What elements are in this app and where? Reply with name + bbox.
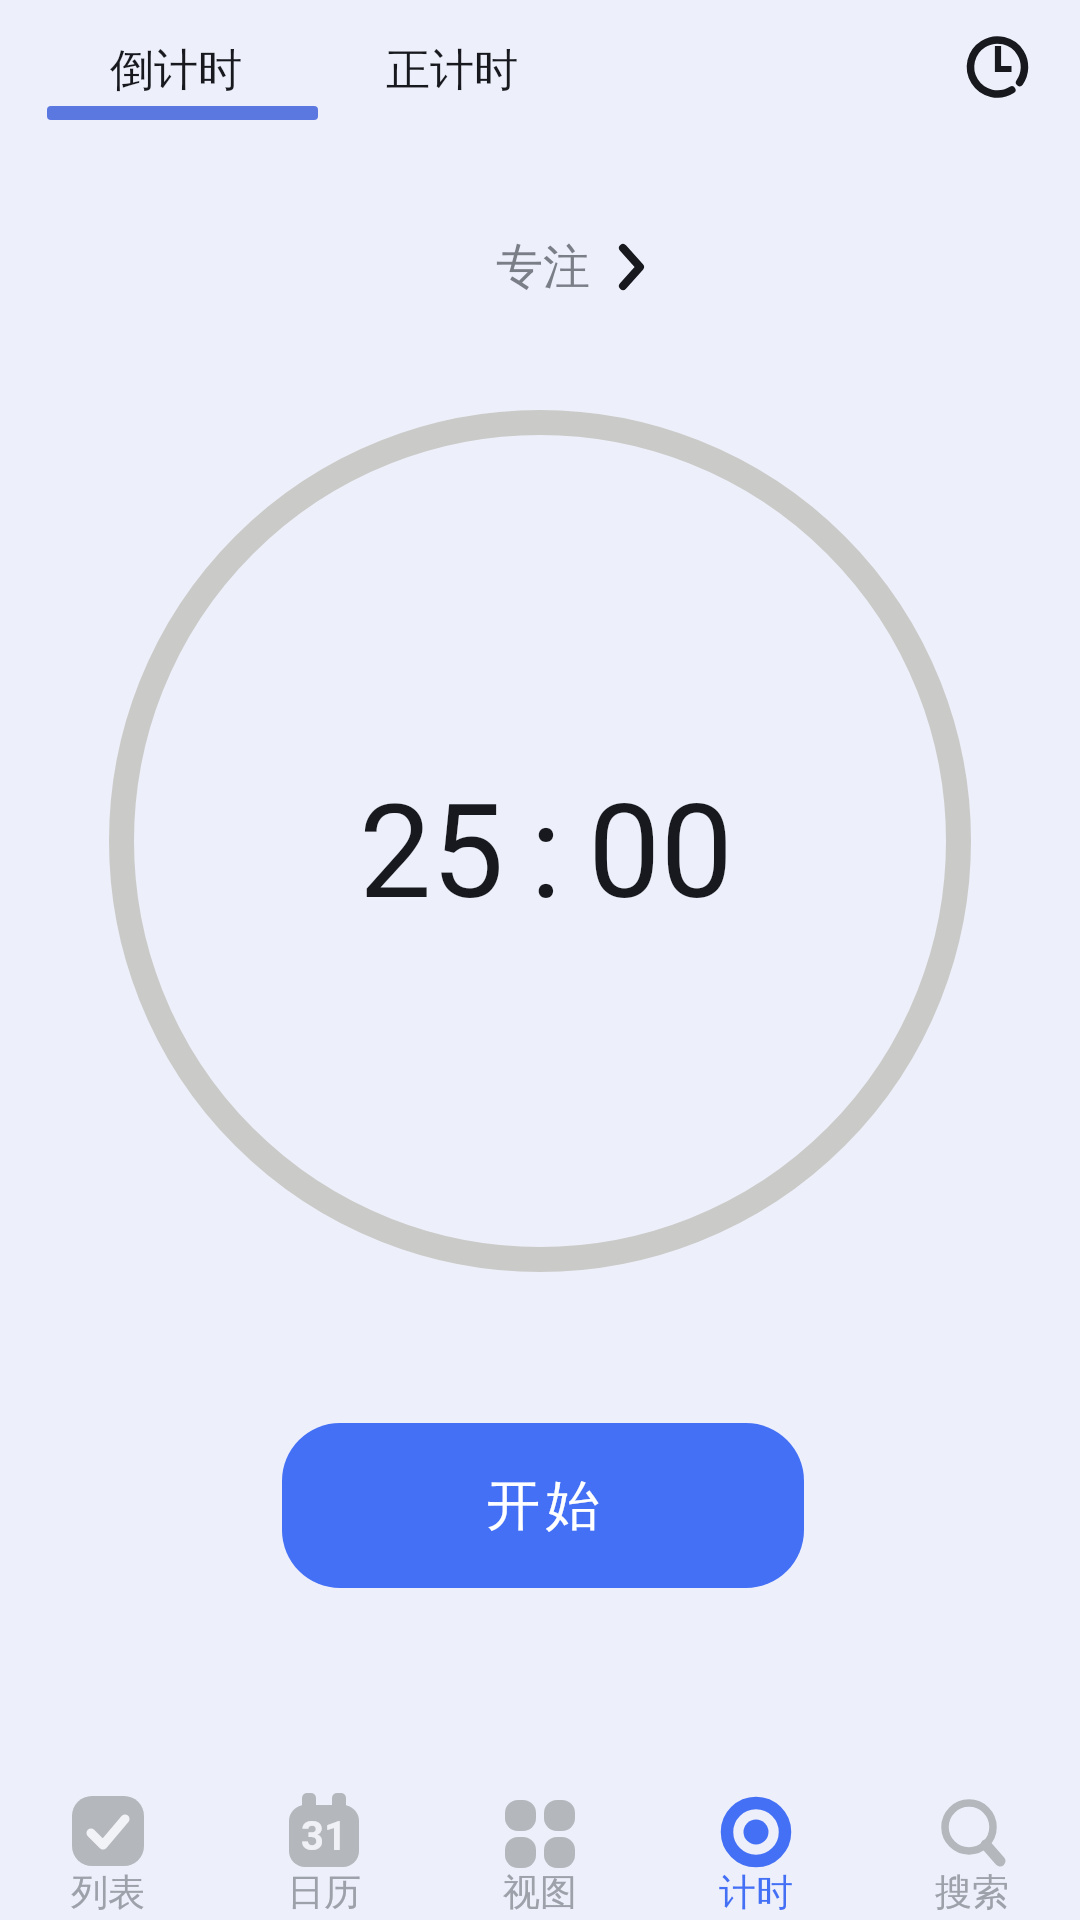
button[interactable]: 正计时	[316, 34, 588, 106]
button[interactable]: 计时	[648, 1780, 864, 1920]
staticText: 视图	[503, 1869, 577, 1916]
staticText: 计时	[719, 1869, 793, 1916]
staticText: 25 : 00	[359, 777, 733, 928]
button[interactable]: 倒计时	[40, 34, 312, 106]
staticText: 正计时	[386, 43, 518, 98]
staticText: 专注	[496, 238, 590, 297]
staticText: 倒计时	[110, 43, 242, 98]
staticText: 31	[301, 1813, 347, 1860]
button[interactable]: 开始	[282, 1423, 804, 1588]
staticText: 搜索	[935, 1869, 1009, 1916]
button[interactable]: 视图	[432, 1780, 648, 1920]
button[interactable]: 31	[216, 1780, 432, 1920]
button[interactable]: 专注	[496, 236, 645, 298]
staticText: 开始	[484, 1472, 602, 1540]
button[interactable]: 列表	[0, 1780, 216, 1920]
button[interactable]: 搜索	[864, 1780, 1080, 1920]
staticText: 列表	[71, 1869, 145, 1916]
staticText: 日历	[287, 1869, 361, 1916]
button[interactable]	[961, 31, 1034, 104]
